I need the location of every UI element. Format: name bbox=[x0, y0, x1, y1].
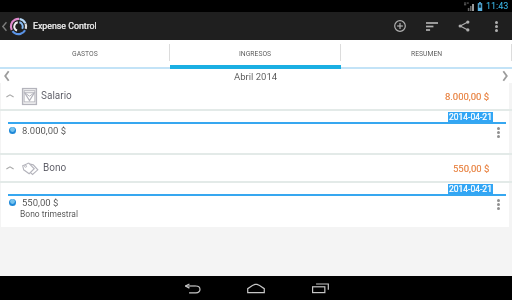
button[interactable]: 2014-04-21 bbox=[1, 111, 509, 153]
button[interactable]: Next month bbox=[498, 69, 512, 83]
staticText: INGRESOS bbox=[239, 50, 272, 58]
button[interactable]: Home bbox=[224, 276, 288, 300]
button[interactable]: More options bbox=[480, 12, 512, 40]
button[interactable]: Share bbox=[448, 12, 480, 40]
button[interactable]: INGRESOS bbox=[170, 40, 341, 69]
staticText: Bono trimestral bbox=[20, 209, 79, 219]
staticText: Expense Control bbox=[33, 21, 97, 31]
button[interactable]: Item options bbox=[497, 127, 500, 138]
staticText: 8.000,00 $ bbox=[22, 125, 67, 136]
staticText: 2014-04-21 bbox=[449, 112, 492, 122]
staticText: 550,00 $ bbox=[22, 197, 59, 208]
staticText: RESUMEN bbox=[411, 50, 443, 58]
staticText: GASTOS bbox=[72, 50, 98, 58]
button[interactable]: Item options bbox=[497, 199, 500, 210]
button[interactable]: GASTOS bbox=[0, 40, 170, 69]
button[interactable]: Sort bbox=[416, 12, 448, 40]
staticText: Bono bbox=[43, 162, 67, 174]
button[interactable]: Bono bbox=[1, 155, 509, 181]
staticText: 8.000,00 $ bbox=[445, 91, 490, 102]
button[interactable]: Recent apps bbox=[288, 276, 352, 300]
button[interactable]: Add bbox=[384, 12, 416, 40]
button[interactable]: Back bbox=[160, 276, 224, 300]
button[interactable]: Salario bbox=[1, 83, 509, 109]
staticText: 2014-04-21 bbox=[449, 184, 492, 194]
staticText: 11:43 bbox=[486, 1, 509, 12]
staticText: 550,00 $ bbox=[453, 163, 490, 174]
button[interactable]: Navigate up bbox=[0, 12, 97, 40]
button[interactable]: 2014-04-21 bbox=[1, 183, 509, 227]
button[interactable]: RESUMEN bbox=[341, 40, 512, 69]
staticText: Salario bbox=[41, 90, 72, 102]
staticText: Abril 2014 bbox=[234, 71, 278, 82]
button[interactable]: Previous month bbox=[0, 69, 14, 83]
